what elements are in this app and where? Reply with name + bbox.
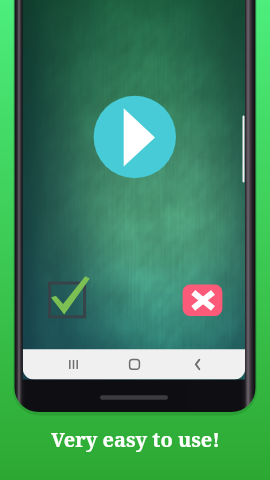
button[interactable]: Accept <box>48 279 91 319</box>
button[interactable]: Recent apps <box>50 350 98 379</box>
staticText: Very easy to use! <box>51 426 220 453</box>
button[interactable]: Back <box>174 350 222 379</box>
button[interactable]: Cancel <box>182 284 223 317</box>
button[interactable]: Play <box>93 96 176 179</box>
button[interactable]: Home <box>111 350 159 379</box>
